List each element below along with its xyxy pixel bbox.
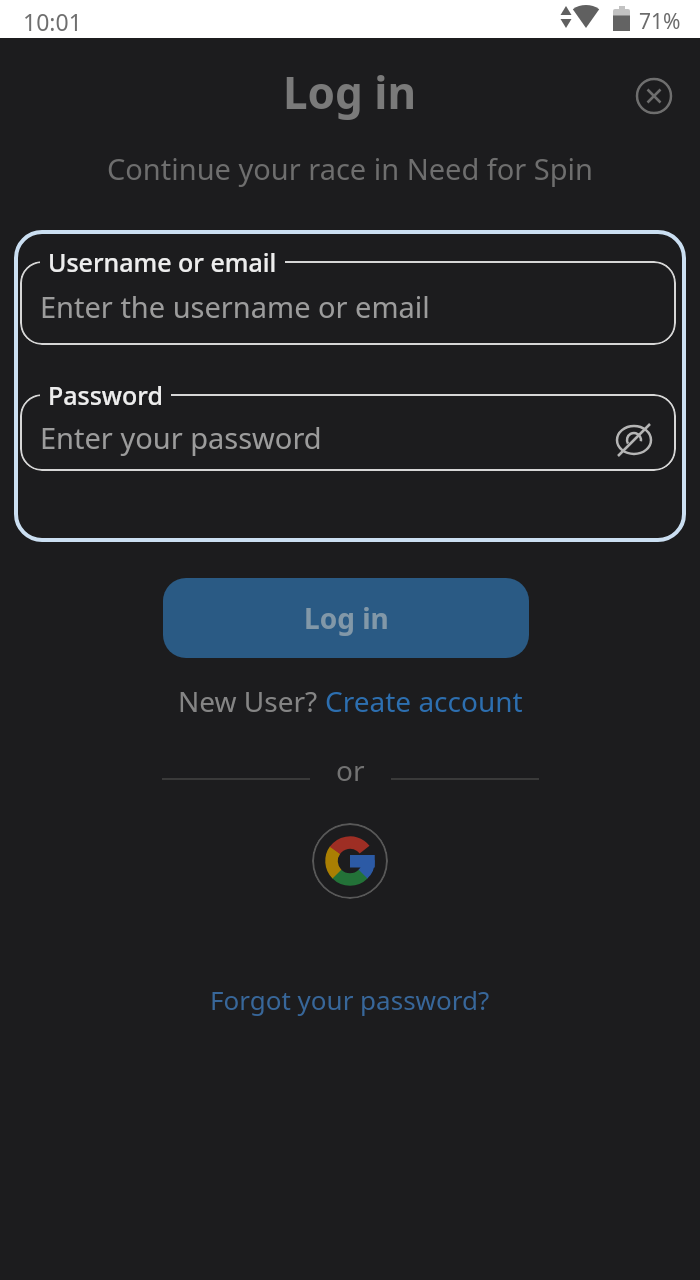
staticText: Enter your password [40,418,322,457]
button[interactable] [612,418,656,462]
button[interactable]: Create account [325,682,523,720]
button[interactable] [312,823,388,899]
staticText: Password [48,378,163,412]
staticText: 71% [639,7,681,36]
staticText: New User? [178,682,325,720]
staticText: Log in [304,599,389,637]
button[interactable]: Forgot your password? [210,982,490,1017]
staticText: 10:01 [23,6,82,37]
staticText: or [336,751,365,789]
button[interactable] [20,394,676,471]
staticText: Continue your race in Need for Spin [107,149,594,188]
button[interactable]: Log in [163,578,529,658]
staticText: Log in [283,62,417,122]
staticText: Username or email [48,245,277,279]
staticText: Enter the username or email [40,287,430,326]
button[interactable] [635,77,673,115]
button[interactable] [20,261,676,345]
